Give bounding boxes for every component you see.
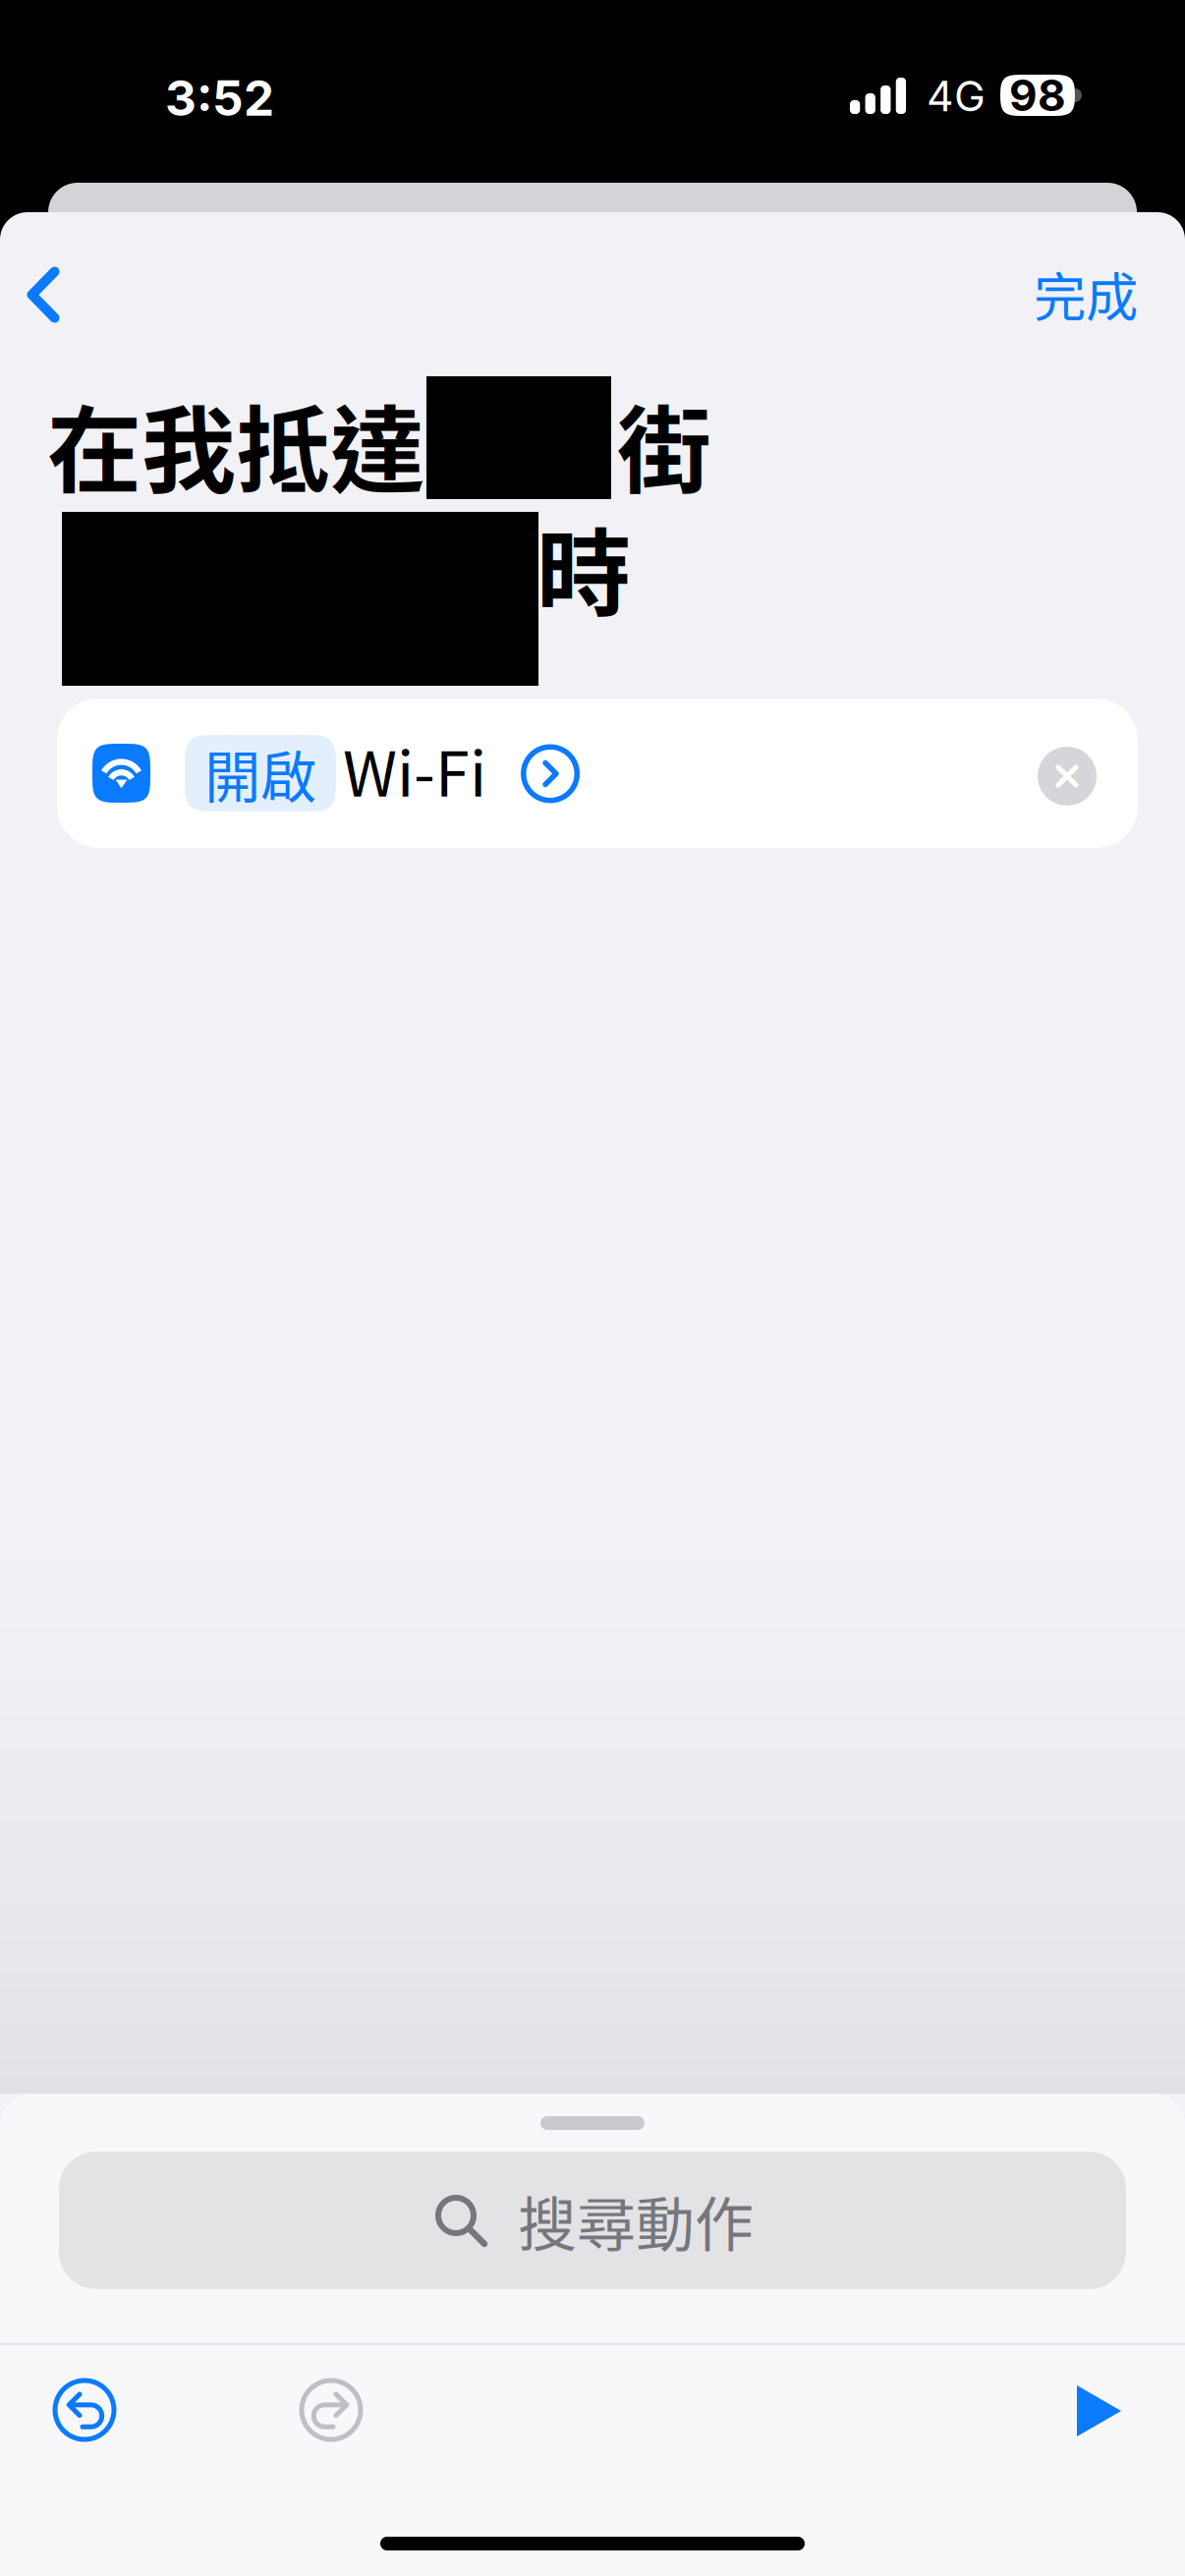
button[interactable]: 完成 bbox=[1012, 247, 1159, 341]
button[interactable]: Undo bbox=[30, 2356, 139, 2464]
button[interactable]: Run bbox=[1044, 2357, 1153, 2465]
staticText: 街 bbox=[617, 375, 711, 512]
staticText: 完成 bbox=[1034, 256, 1138, 332]
button[interactable]: Redo bbox=[277, 2356, 385, 2464]
staticText: 4G bbox=[927, 71, 986, 121]
staticText: 3:52 bbox=[165, 69, 274, 127]
staticText: 98 bbox=[1009, 69, 1066, 121]
button[interactable]: Back bbox=[0, 248, 90, 342]
staticText: Wi-Fi bbox=[343, 725, 486, 814]
staticText: 在我抵達 bbox=[47, 375, 424, 512]
button[interactable]: 搜尋動作 bbox=[59, 2152, 1126, 2289]
button[interactable]: 開啟 bbox=[57, 699, 1138, 848]
staticText: 開啟 bbox=[204, 732, 316, 814]
staticText: 時 bbox=[536, 498, 631, 635]
staticText: 搜尋動作 bbox=[518, 2178, 754, 2263]
